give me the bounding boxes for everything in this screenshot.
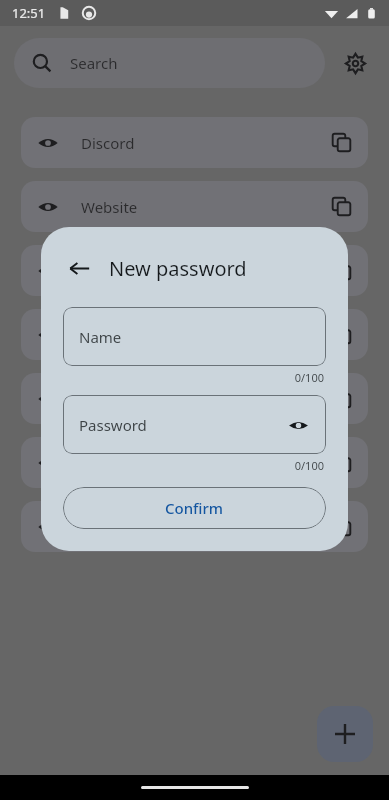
- staticText: Discord: [81, 133, 135, 153]
- button[interactable]: Password: [63, 395, 326, 454]
- staticText: Name: [79, 327, 122, 347]
- button[interactable]: Show password: [284, 411, 312, 439]
- staticText: 0/100: [294, 458, 324, 473]
- button[interactable]: [21, 245, 368, 296]
- button[interactable]: Confirm: [63, 487, 326, 529]
- button[interactable]: Search: [14, 38, 325, 88]
- button[interactable]: [21, 437, 368, 488]
- button[interactable]: [21, 373, 368, 424]
- staticText: 12:51: [12, 4, 46, 22]
- button[interactable]: Back: [63, 252, 95, 284]
- button[interactable]: [21, 501, 368, 552]
- button[interactable]: Website: [21, 181, 368, 232]
- button[interactable]: Add password: [317, 706, 373, 762]
- staticText: Password: [79, 415, 147, 435]
- button[interactable]: Discord: [21, 117, 368, 168]
- button[interactable]: Settings: [335, 43, 375, 83]
- staticText: Website: [81, 197, 138, 217]
- button[interactable]: Name: [63, 307, 326, 366]
- staticText: New password: [109, 255, 247, 282]
- button[interactable]: [21, 309, 368, 360]
- staticText: Confirm: [165, 498, 224, 518]
- staticText: Search: [70, 53, 118, 73]
- staticText: 0/100: [294, 370, 324, 385]
